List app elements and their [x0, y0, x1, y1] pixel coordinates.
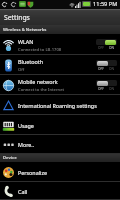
button[interactable]: More.. [0, 135, 120, 154]
button[interactable]: WLAN [0, 34, 120, 55]
button[interactable]: Usage [0, 115, 120, 135]
button[interactable]: Switch off [96, 80, 117, 91]
staticText: International Roaming settings [18, 102, 97, 109]
button[interactable]: Switch on [96, 39, 117, 50]
button[interactable]: Bluetooth [0, 55, 120, 75]
staticText: Connected to LB-1708 [18, 47, 62, 53]
staticText: ON [109, 87, 114, 91]
button[interactable]: Personalize [0, 162, 120, 182]
button[interactable]: Mobile network [0, 75, 120, 95]
staticText: ON [109, 67, 114, 71]
staticText: More.. [18, 141, 35, 148]
staticText: Device [3, 155, 17, 161]
staticText: Off [18, 67, 25, 73]
staticText: Settings [4, 13, 30, 22]
staticText: OFF [98, 87, 104, 91]
staticText: OFF [98, 67, 104, 71]
staticText: OFF [98, 46, 104, 50]
staticText: Personalize [18, 169, 48, 176]
button[interactable]: Switch off [96, 60, 117, 71]
staticText: Usage [18, 122, 34, 129]
staticText: WLAN [18, 38, 34, 45]
button[interactable]: International Roaming settings [0, 95, 120, 115]
staticText: Connect to the Internet [18, 87, 65, 93]
button[interactable]: Call [0, 182, 120, 200]
staticText: Wireless & Networks [3, 27, 47, 33]
staticText: Call [18, 188, 28, 195]
staticText: ON [109, 46, 114, 50]
staticText: Mobile network [18, 78, 58, 85]
staticText: Bluetooth [18, 58, 44, 65]
staticText: 11:59 PM [93, 0, 118, 8]
